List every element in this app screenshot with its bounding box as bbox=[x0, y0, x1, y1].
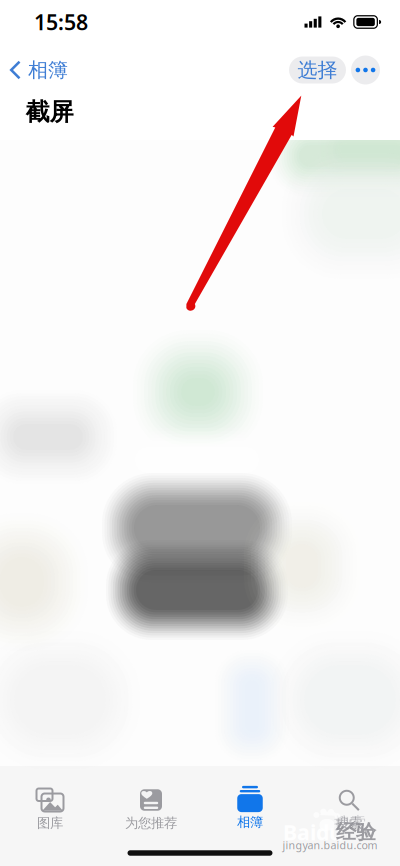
staticText: jingyan.baidu.com bbox=[282, 838, 377, 852]
button[interactable]: 图库 bbox=[20, 766, 80, 838]
button[interactable]: 搜索 bbox=[319, 766, 379, 838]
staticText: 15:58 bbox=[34, 8, 88, 36]
staticText: 选择 bbox=[297, 58, 337, 82]
staticText: 相簿 bbox=[28, 58, 68, 82]
staticText: 为您推荐 bbox=[125, 815, 177, 831]
button[interactable]: 相簿 bbox=[2, 52, 74, 88]
button[interactable]: More options bbox=[351, 55, 380, 84]
staticText: 截屏 bbox=[25, 97, 73, 127]
staticText: Baidu bbox=[283, 818, 343, 846]
button[interactable]: 为您推荐 bbox=[121, 766, 181, 838]
staticText: 经验 bbox=[336, 820, 376, 844]
staticText: 搜索 bbox=[336, 815, 362, 831]
button[interactable]: 相簿 bbox=[220, 765, 280, 837]
staticText: 图库 bbox=[37, 815, 63, 831]
staticText: 相簿 bbox=[237, 814, 263, 830]
button[interactable]: 选择 bbox=[289, 56, 346, 83]
staticText: 搜索 bbox=[334, 813, 366, 833]
